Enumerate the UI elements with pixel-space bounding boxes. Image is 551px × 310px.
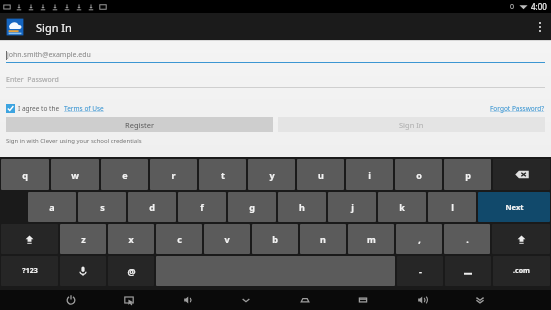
- staticText: t: [221, 169, 225, 181]
- button[interactable]: z: [60, 224, 106, 254]
- staticText: f: [200, 201, 204, 213]
- button[interactable]: Next: [478, 192, 550, 222]
- staticText: ?123: [22, 266, 38, 276]
- button[interactable]: Volume down: [177, 290, 199, 310]
- button[interactable]: o: [395, 159, 442, 190]
- button[interactable]: a: [28, 192, 76, 222]
- button[interactable]: Terms of Use: [64, 104, 104, 113]
- button[interactable]: Recents: [352, 290, 374, 310]
- staticText: r: [171, 169, 176, 181]
- staticText: ,: [418, 233, 421, 245]
- staticText: Terms of Use: [64, 104, 104, 113]
- staticText: Sign In: [399, 120, 424, 130]
- button[interactable]: @: [108, 256, 154, 286]
- button[interactable]: Shift: [492, 224, 550, 254]
- button[interactable]: I agree to the: [6, 104, 60, 113]
- staticText: e: [122, 169, 128, 181]
- button[interactable]: k: [378, 192, 426, 222]
- button[interactable]: Enter Password: [6, 73, 545, 88]
- button[interactable]: Voice input: [60, 256, 106, 286]
- staticText: 0: [510, 2, 515, 12]
- button[interactable]: More options: [529, 13, 551, 40]
- staticText: h: [299, 201, 305, 213]
- staticText: Enter Password: [6, 75, 59, 85]
- staticText: b: [272, 233, 278, 245]
- staticText: @: [127, 265, 136, 277]
- button[interactable]: p: [444, 159, 491, 190]
- button[interactable]: q: [1, 159, 49, 190]
- button[interactable]: .: [444, 224, 490, 254]
- button[interactable]: y: [248, 159, 295, 190]
- staticText: y: [269, 169, 275, 181]
- staticText: Forgot Password?: [490, 104, 545, 113]
- button[interactable]: ,: [396, 224, 442, 254]
- staticText: c: [177, 233, 182, 245]
- staticText: q: [22, 169, 28, 181]
- staticText: s: [100, 201, 105, 213]
- staticText: i: [368, 169, 371, 181]
- button[interactable]: Hide keyboard: [235, 290, 257, 310]
- button[interactable]: Up: [4, 16, 26, 38]
- staticText: z: [81, 233, 86, 245]
- staticText: g: [249, 201, 255, 213]
- staticText: x: [128, 233, 134, 245]
- button[interactable]: Screenshot: [118, 290, 140, 310]
- button[interactable]: v: [204, 224, 250, 254]
- staticText: Sign In: [36, 20, 72, 35]
- button[interactable]: r: [150, 159, 197, 190]
- staticText: .com: [513, 266, 530, 276]
- staticText: Next: [505, 202, 524, 212]
- button[interactable]: i: [346, 159, 393, 190]
- button[interactable]: b: [252, 224, 298, 254]
- staticText: v: [224, 233, 230, 245]
- staticText: Sign in with Clever using your school cr…: [6, 137, 142, 145]
- staticText: -: [419, 265, 422, 277]
- button[interactable]: n: [300, 224, 346, 254]
- staticText: john.smith@example.edu: [7, 50, 91, 60]
- button[interactable]: h: [278, 192, 326, 222]
- staticText: l: [451, 201, 454, 213]
- staticText: a: [49, 201, 55, 213]
- button[interactable]: w: [51, 159, 99, 190]
- button[interactable]: f: [178, 192, 226, 222]
- staticText: o: [416, 169, 422, 181]
- button[interactable]: Forgot Password?: [490, 104, 545, 113]
- staticText: u: [318, 169, 324, 181]
- staticText: k: [399, 201, 405, 213]
- button[interactable]: u: [297, 159, 344, 190]
- button[interactable]: c: [156, 224, 202, 254]
- staticText: 4:00: [531, 1, 547, 12]
- staticText: I agree to the: [18, 104, 60, 113]
- staticText: m: [367, 233, 376, 245]
- button[interactable]: e: [101, 159, 148, 190]
- staticText: .: [466, 233, 469, 245]
- staticText: p: [465, 169, 471, 181]
- button[interactable]: Sign In: [278, 117, 545, 132]
- button[interactable]: Power: [60, 290, 82, 310]
- button[interactable]: Backspace: [493, 159, 550, 190]
- staticText: n: [320, 233, 326, 245]
- button[interactable]: Home: [294, 290, 316, 310]
- button[interactable]: Volume up: [411, 290, 433, 310]
- staticText: Register: [125, 120, 155, 130]
- button[interactable]: l: [428, 192, 476, 222]
- button[interactable]: ?123: [1, 256, 58, 286]
- button[interactable]: j: [328, 192, 376, 222]
- button[interactable]: .com: [493, 256, 550, 286]
- button[interactable]: -: [397, 256, 443, 286]
- button[interactable]: m: [348, 224, 394, 254]
- button[interactable]: Underscore: [445, 256, 491, 286]
- staticText: d: [149, 201, 155, 213]
- button[interactable]: s: [78, 192, 126, 222]
- button[interactable]: d: [128, 192, 176, 222]
- button[interactable]: t: [199, 159, 246, 190]
- button[interactable]: Register: [6, 117, 273, 132]
- staticText: j: [351, 201, 354, 213]
- staticText: w: [71, 169, 79, 181]
- button[interactable]: Shift: [1, 224, 58, 254]
- button[interactable]: x: [108, 224, 154, 254]
- button[interactable]: Collapse: [469, 290, 491, 310]
- button[interactable]: g: [228, 192, 276, 222]
- button[interactable]: john.smith@example.edu: [6, 47, 545, 63]
